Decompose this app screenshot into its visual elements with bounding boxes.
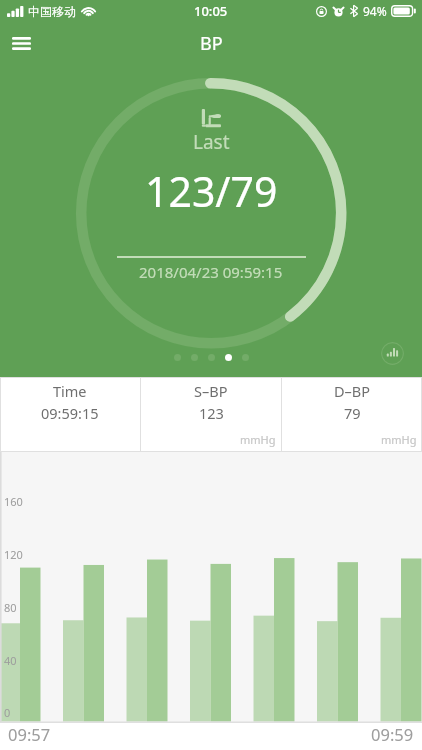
staticText: 0 xyxy=(4,705,11,720)
button[interactable]: D–BP xyxy=(282,377,422,452)
staticText: 80 xyxy=(4,600,17,615)
staticText: S–BP xyxy=(194,381,228,401)
staticText: 09:59 xyxy=(371,723,414,745)
staticText: Time xyxy=(53,381,87,401)
button[interactable]: Menu xyxy=(0,22,42,64)
staticText: BP xyxy=(200,31,223,56)
staticText: 123 xyxy=(199,403,224,423)
staticText: D–BP xyxy=(334,381,371,401)
staticText: Last xyxy=(193,129,230,155)
staticText: 10:05 xyxy=(194,2,228,20)
button[interactable]: Time xyxy=(0,377,140,452)
staticText: 160 xyxy=(4,494,23,509)
staticText: 120 xyxy=(4,547,23,562)
staticText: 79 xyxy=(344,403,361,423)
staticText: 123/79 xyxy=(145,163,278,219)
staticText: 2018/04/23 09:59:15 xyxy=(139,262,283,282)
staticText: 94% xyxy=(363,3,387,19)
staticText: 09:57 xyxy=(8,723,51,745)
staticText: 40 xyxy=(4,653,17,668)
staticText: 中国移动 xyxy=(28,4,76,19)
button[interactable]: Statistics xyxy=(381,342,404,365)
staticText: mmHg xyxy=(381,432,417,447)
staticText: 09:59:15 xyxy=(41,403,99,423)
staticText: mmHg xyxy=(240,432,276,447)
button[interactable]: S–BP xyxy=(141,377,281,452)
